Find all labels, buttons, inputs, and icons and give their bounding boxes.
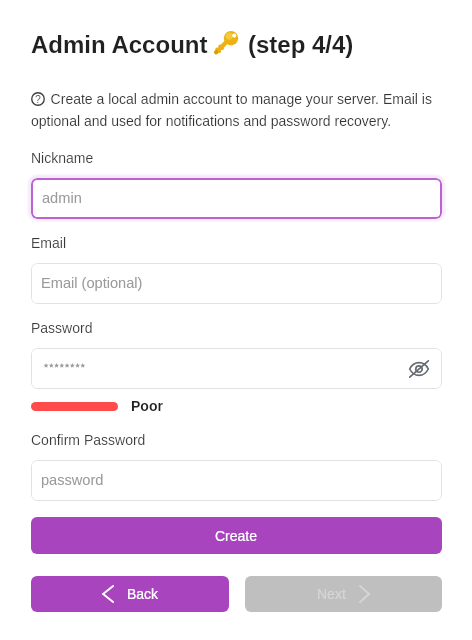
button[interactable]: Next <box>245 576 442 612</box>
button[interactable]: Show password <box>31 348 442 389</box>
staticText: Password <box>31 320 93 336</box>
button[interactable]: Back <box>31 576 229 612</box>
button[interactable]: password <box>31 460 442 501</box>
button[interactable]: Show password <box>405 355 433 383</box>
button[interactable]: Create <box>31 517 442 554</box>
button[interactable]: Email (optional) <box>31 263 442 304</box>
staticText: Back <box>127 586 159 602</box>
staticText: Email <box>31 235 67 251</box>
staticText: Create a local admin account to manage y… <box>31 91 443 129</box>
button[interactable]: admin <box>31 178 442 219</box>
staticText: Nickname <box>31 150 94 166</box>
staticText: admin <box>42 190 82 206</box>
staticText: Admin Account <box>31 31 208 58</box>
staticText: Email (optional) <box>41 275 143 291</box>
staticText: ? <box>35 93 41 105</box>
staticText: (step 4/4) <box>248 31 354 58</box>
staticText: Create <box>215 528 258 544</box>
staticText: Next <box>317 586 346 602</box>
staticText: Confirm Password <box>31 432 146 448</box>
staticText: Poor <box>131 398 163 414</box>
staticText: password <box>41 472 104 488</box>
